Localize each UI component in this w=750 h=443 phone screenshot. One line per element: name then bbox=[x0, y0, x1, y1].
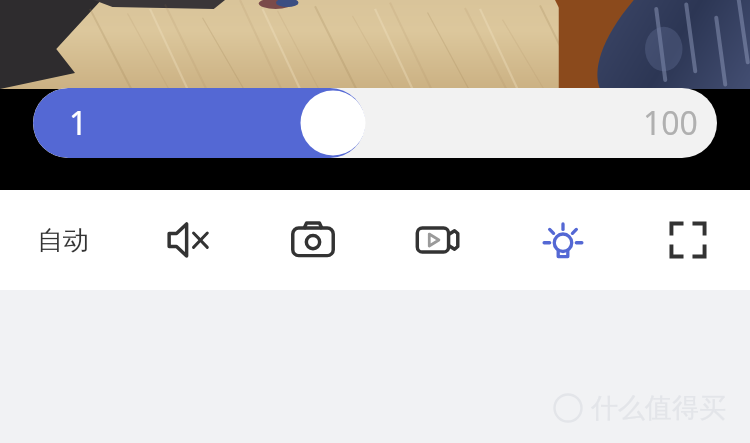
button[interactable]: Video bbox=[388, 190, 488, 290]
button[interactable]: Fullscreen bbox=[638, 190, 738, 290]
button[interactable]: Mute bbox=[138, 190, 238, 290]
staticText: 100 bbox=[643, 101, 698, 145]
staticText: 1 bbox=[69, 101, 88, 145]
button[interactable]: Brightness bbox=[33, 88, 717, 158]
staticText: 什么值得买 bbox=[591, 391, 726, 425]
button[interactable]: 自动 bbox=[13, 190, 113, 290]
button[interactable]: Light bbox=[513, 190, 613, 290]
staticText: 自动 bbox=[37, 224, 89, 257]
button[interactable]: Photo bbox=[263, 190, 363, 290]
